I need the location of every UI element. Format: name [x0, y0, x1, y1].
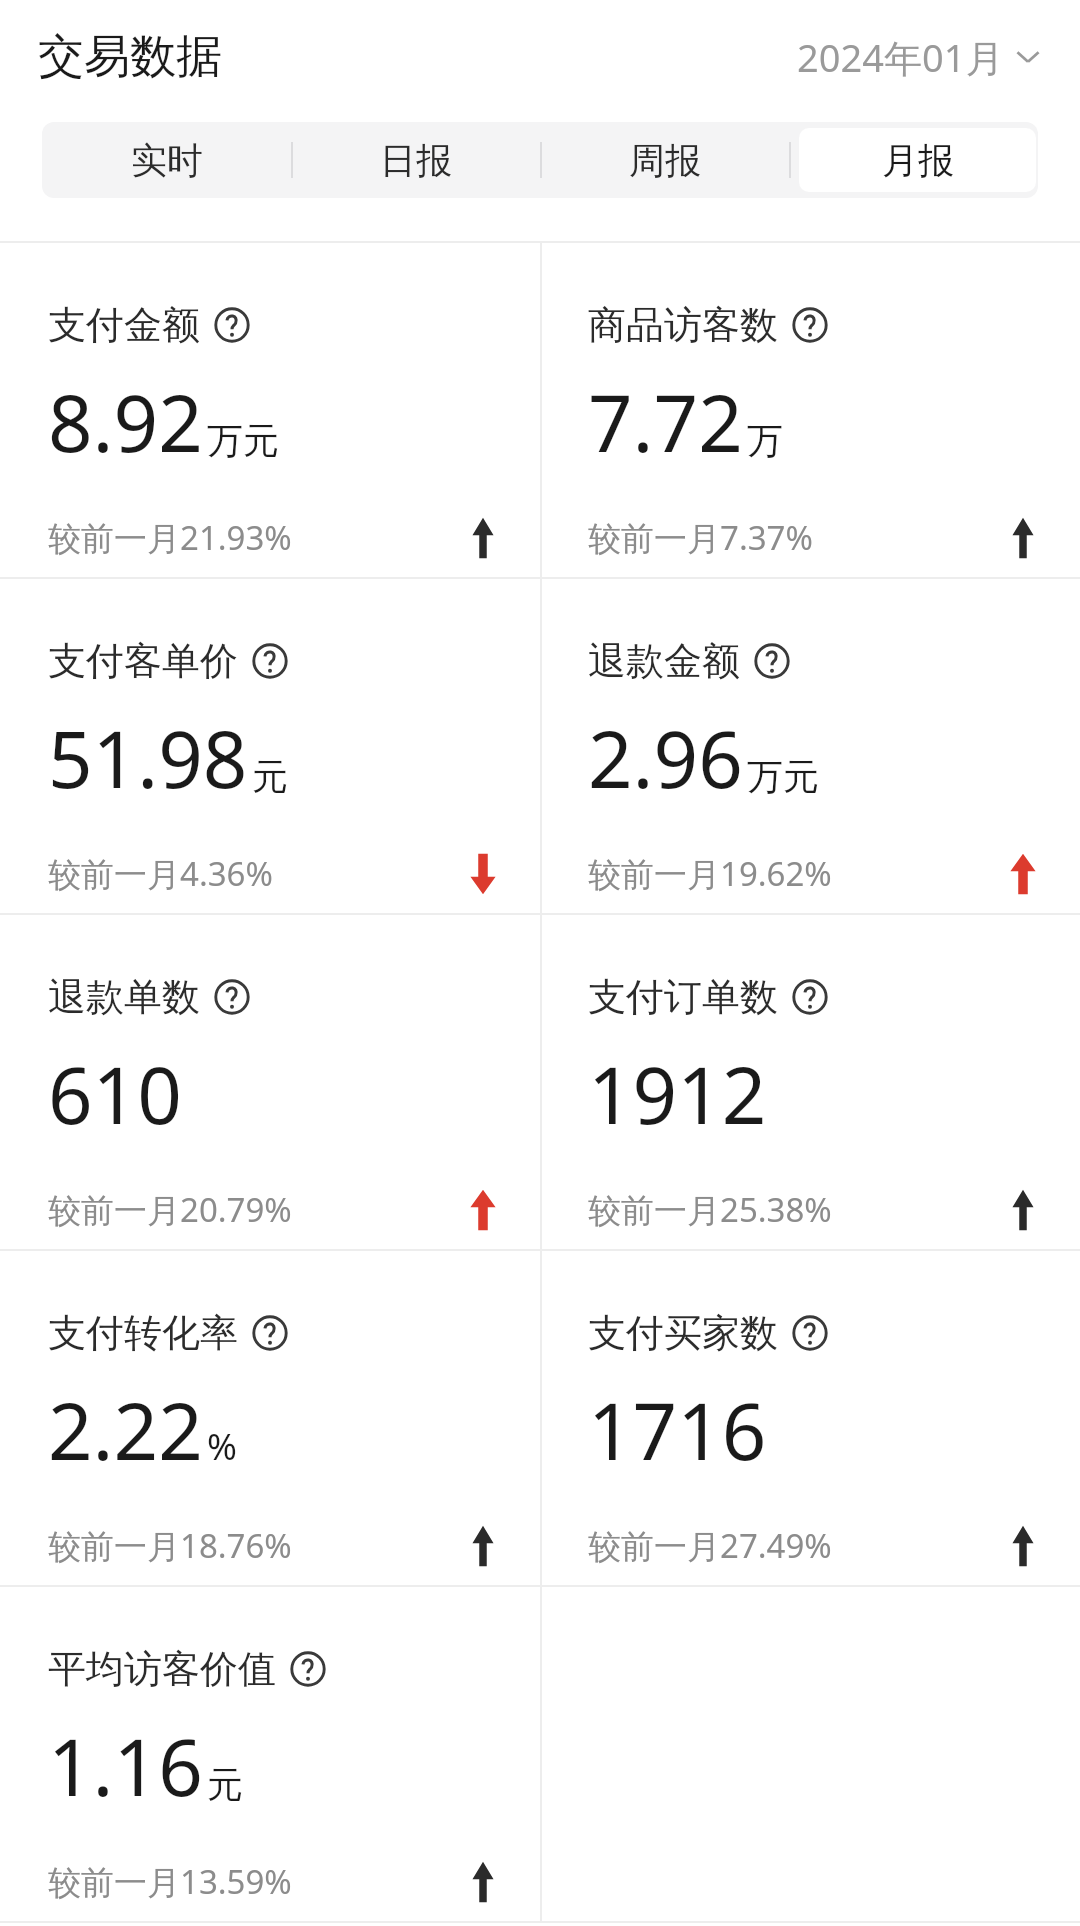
staticText: 7.72 [588, 369, 743, 475]
staticText: 元 [252, 754, 288, 799]
other: Help: 退款单数 [214, 979, 250, 1015]
staticText: 8.92 [48, 369, 203, 475]
staticText: 1716 [588, 1377, 767, 1483]
other: Help: 支付转化率 [252, 1315, 288, 1351]
other: Increase [1006, 1188, 1040, 1232]
staticText: 日报 [380, 138, 452, 183]
other: Help: 支付金额 [214, 307, 250, 343]
staticText: 较前一月13.59% [48, 1859, 292, 1904]
staticText: 较前一月19.62% [588, 851, 832, 896]
staticText: 较前一月4.36% [48, 851, 273, 896]
staticText: 610 [48, 1041, 182, 1147]
staticText: 平均访客价值 [48, 1645, 276, 1693]
staticText: 万元 [207, 418, 279, 463]
other: Help: 支付客单价 [252, 643, 288, 679]
staticText: 周报 [629, 138, 701, 183]
staticText: 退款单数 [48, 973, 200, 1021]
staticText: 51.98 [48, 705, 248, 811]
staticText: 较前一月27.49% [588, 1523, 832, 1568]
button[interactable]: 平均访客价值 [0, 1587, 540, 1923]
button[interactable]: 实时 [42, 122, 291, 198]
staticText: 2024年01月 [797, 31, 1004, 83]
staticText: 较前一月7.37% [588, 515, 813, 560]
staticText: 退款金额 [588, 637, 740, 685]
button[interactable]: 退款金额 [540, 579, 1080, 915]
button[interactable]: 2024年01月 [777, 23, 1080, 91]
staticText: 商品访客数 [588, 301, 778, 349]
other: Help: 支付订单数 [792, 979, 828, 1015]
staticText: 实时 [131, 138, 203, 183]
other: Help: 支付买家数 [792, 1315, 828, 1351]
other: Increase [1006, 1524, 1040, 1568]
staticText: 支付金额 [48, 301, 200, 349]
staticText: 元 [207, 1762, 243, 1807]
button[interactable]: 支付金额 [0, 243, 540, 579]
button[interactable]: 月报 [799, 128, 1036, 192]
button[interactable]: 支付订单数 [540, 915, 1080, 1251]
staticText: 1912 [588, 1041, 767, 1147]
button[interactable]: 周报 [540, 122, 789, 198]
staticText: 支付买家数 [588, 1309, 778, 1357]
other: Increase [466, 1188, 500, 1232]
other: Help: 平均访客价值 [290, 1651, 326, 1687]
other: Increase [466, 1860, 500, 1904]
button[interactable]: 支付客单价 [0, 579, 540, 915]
other: Increase [466, 516, 500, 560]
staticText: % [207, 1422, 237, 1471]
staticText: 2.22 [48, 1377, 203, 1483]
other: Increase [1006, 516, 1040, 560]
staticText: 较前一月20.79% [48, 1187, 292, 1232]
other: Increase [466, 1524, 500, 1568]
staticText: 较前一月18.76% [48, 1523, 292, 1568]
staticText: 万元 [747, 754, 819, 799]
button[interactable]: 支付转化率 [0, 1251, 540, 1587]
button[interactable]: 商品访客数 [540, 243, 1080, 579]
staticText: 交易数据 [38, 28, 222, 86]
other: Select month [1012, 41, 1044, 73]
staticText: 支付转化率 [48, 1309, 238, 1357]
staticText: 较前一月21.93% [48, 515, 292, 560]
other: Help: 商品访客数 [792, 307, 828, 343]
staticText: 支付订单数 [588, 973, 778, 1021]
staticText: 2.96 [588, 705, 743, 811]
staticText: 1.16 [48, 1713, 203, 1819]
other: Help: 退款金额 [754, 643, 790, 679]
staticText: 支付客单价 [48, 637, 238, 685]
button[interactable]: 日报 [291, 122, 540, 198]
other: Decrease [466, 852, 500, 896]
button[interactable]: 退款单数 [0, 915, 540, 1251]
staticText: 较前一月25.38% [588, 1187, 832, 1232]
staticText: 月报 [882, 138, 954, 183]
button[interactable]: 支付买家数 [540, 1251, 1080, 1587]
staticText: 万 [747, 418, 783, 463]
other: Increase [1006, 852, 1040, 896]
